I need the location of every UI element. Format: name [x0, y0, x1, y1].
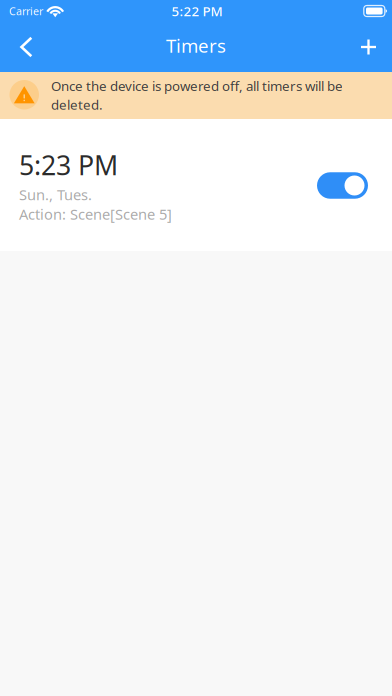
staticText: deleted.	[51, 96, 103, 113]
staticText: Timers	[166, 33, 226, 58]
staticText: Carrier	[9, 4, 43, 18]
staticText: Once the device is powered off, all time…	[51, 77, 343, 95]
staticText: 5:22 PM	[171, 2, 222, 20]
button[interactable]: Timer enabled	[317, 172, 368, 199]
button[interactable]: Back	[0, 22, 47, 72]
staticText: 5:23 PM	[19, 147, 118, 183]
staticText: Sun., Tues.	[19, 185, 92, 204]
button[interactable]: 5:23 PM	[19, 146, 172, 224]
staticText: Action: Scene[Scene 5]	[19, 204, 172, 224]
button[interactable]: Add timer	[345, 22, 392, 72]
